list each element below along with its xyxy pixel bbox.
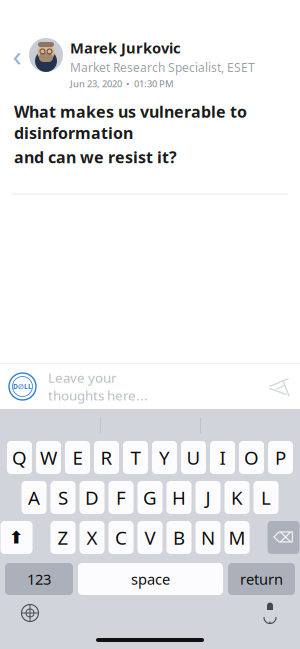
- button[interactable]: C: [108, 521, 133, 554]
- button[interactable]: Y: [152, 441, 177, 474]
- staticText: What makes us vulnerable to disinformati…: [14, 101, 247, 143]
- staticText: Y: [159, 445, 170, 470]
- staticText: T: [130, 445, 140, 470]
- button[interactable]: D: [79, 481, 104, 514]
- button[interactable]: V: [137, 521, 162, 554]
- button[interactable]: space: [78, 563, 223, 595]
- staticText: O: [244, 445, 259, 470]
- staticText: B: [173, 525, 185, 550]
- staticText: space: [131, 569, 170, 589]
- staticText: J: [205, 485, 210, 510]
- button[interactable]: Z: [50, 521, 75, 554]
- staticText: E: [72, 445, 82, 470]
- staticText: H: [172, 485, 186, 510]
- button[interactable]: X: [79, 521, 104, 554]
- button[interactable]: Delete: [267, 521, 299, 554]
- button[interactable]: L: [253, 481, 278, 514]
- staticText: C: [115, 525, 127, 550]
- staticText: U: [186, 445, 200, 470]
- staticText: D: [85, 485, 99, 510]
- button[interactable]: I: [210, 441, 235, 474]
- button[interactable]: T: [123, 441, 148, 474]
- staticText: V: [144, 525, 155, 550]
- button[interactable]: W: [36, 441, 61, 474]
- button[interactable]: K: [224, 481, 249, 514]
- staticText: Z: [57, 525, 68, 550]
- staticText: S: [58, 485, 68, 510]
- staticText: X: [86, 525, 97, 550]
- staticText: Marek Jurkovic: [70, 38, 181, 57]
- button[interactable]: Change keyboard: [17, 600, 43, 626]
- staticText: K: [231, 485, 243, 510]
- staticText: P: [275, 445, 286, 470]
- button[interactable]: U: [181, 441, 206, 474]
- staticText: 123: [27, 569, 51, 589]
- staticText: Market Research Specialist, ESET: [70, 59, 255, 75]
- button[interactable]: Dictate: [257, 600, 283, 626]
- button[interactable]: Q: [7, 441, 32, 474]
- button[interactable]: Back: [6, 38, 28, 72]
- button[interactable]: S: [50, 481, 75, 514]
- button[interactable]: Send: [264, 371, 294, 401]
- button[interactable]: return: [228, 563, 295, 595]
- staticText: A: [28, 485, 40, 510]
- button[interactable]: Leave your thoughts here...: [36, 365, 150, 407]
- staticText: ‹: [12, 35, 21, 74]
- staticText: D∅LL: [13, 382, 32, 391]
- staticText: N: [201, 525, 215, 550]
- staticText: return: [240, 569, 283, 589]
- staticText: and can we resist it?: [14, 146, 177, 167]
- button[interactable]: O: [239, 441, 264, 474]
- staticText: R: [100, 445, 112, 470]
- button[interactable]: E: [65, 441, 90, 474]
- staticText: Q: [12, 445, 27, 470]
- button[interactable]: R: [94, 441, 119, 474]
- staticText: M: [228, 525, 245, 550]
- button[interactable]: B: [166, 521, 191, 554]
- button[interactable]: M: [224, 521, 249, 554]
- staticText: W: [40, 445, 57, 470]
- staticText: ⌫: [273, 529, 294, 546]
- button[interactable]: G: [137, 481, 162, 514]
- button[interactable]: A: [21, 481, 46, 514]
- staticText: Jun 23, 2020 • 01:30 PM: [70, 77, 174, 90]
- button[interactable]: Shift: [0, 521, 32, 554]
- staticText: F: [116, 485, 126, 510]
- button[interactable]: J: [195, 481, 220, 514]
- staticText: Leave your thoughts here...: [48, 369, 148, 404]
- button[interactable]: 123: [5, 563, 73, 595]
- button[interactable]: P: [268, 441, 293, 474]
- staticText: ⬆: [9, 528, 24, 547]
- button[interactable]: H: [166, 481, 191, 514]
- button[interactable]: N: [195, 521, 220, 554]
- staticText: L: [261, 485, 271, 510]
- staticText: I: [219, 445, 225, 470]
- button[interactable]: F: [108, 481, 133, 514]
- staticText: G: [143, 485, 157, 510]
